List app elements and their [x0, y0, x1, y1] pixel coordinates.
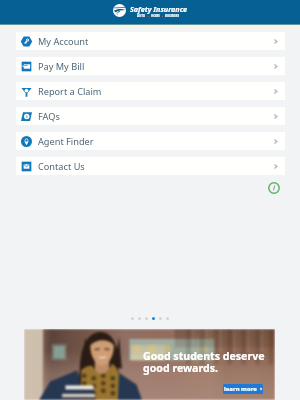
- staticText: Safety Insurance: [130, 4, 188, 14]
- staticText: HOME: [151, 14, 160, 18]
- button[interactable]: Contact Us: [16, 157, 285, 175]
- button[interactable]: FAQs: [16, 107, 285, 125]
- button[interactable]: [131, 317, 134, 320]
- staticText: BUSINESS: [165, 14, 179, 18]
- button[interactable]: Agent Finder: [16, 132, 285, 150]
- other: Loading: [268, 182, 280, 194]
- button[interactable]: [152, 317, 155, 320]
- staticText: Report a Claim: [38, 85, 102, 98]
- button[interactable]: [138, 317, 141, 320]
- button[interactable]: [145, 317, 148, 320]
- staticText: My Account: [38, 35, 89, 48]
- staticText: FAQs: [38, 110, 60, 123]
- staticText: Good students deserve good rewards.: [143, 349, 265, 375]
- button[interactable]: learn more: [223, 384, 263, 394]
- staticText: learn more: [224, 385, 257, 393]
- staticText: Contact Us: [38, 160, 85, 173]
- button[interactable]: [159, 317, 162, 320]
- button[interactable]: [166, 317, 169, 320]
- button[interactable]: Pay My Bill: [16, 57, 285, 75]
- button[interactable]: My Account: [16, 32, 285, 50]
- staticText: Agent Finder: [38, 135, 94, 148]
- staticText: Pay My Bill: [38, 60, 85, 73]
- staticText: AUTO: [137, 14, 146, 18]
- button[interactable]: Report a Claim: [16, 82, 285, 100]
- button[interactable]: Good students deserve good rewards.: [24, 329, 275, 400]
